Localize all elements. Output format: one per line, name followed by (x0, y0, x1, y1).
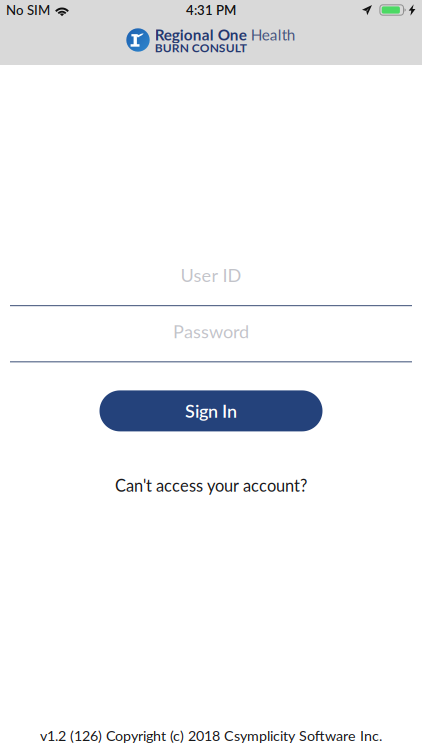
staticText: 4:31 PM (186, 2, 236, 18)
staticText: Sign In (185, 400, 237, 422)
staticText: No SIM (6, 2, 50, 18)
staticText: User ID (180, 264, 241, 286)
staticText: v1.2 (126) Copyright (c) 2018 Csymplicit… (40, 727, 382, 744)
staticText: Password (173, 320, 249, 342)
staticText: Health (247, 25, 296, 44)
button[interactable]: Can't access your account? (115, 474, 307, 496)
staticText: Can't access your account? (115, 476, 307, 495)
staticText: Regional One (155, 25, 247, 44)
button[interactable]: Sign In (99, 390, 322, 431)
staticText: BURN CONSULT (155, 40, 247, 55)
